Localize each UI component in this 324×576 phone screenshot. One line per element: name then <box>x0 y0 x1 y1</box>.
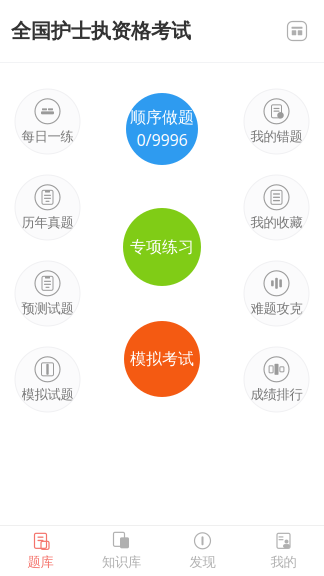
button[interactable]: 预测试题 <box>15 261 80 326</box>
button[interactable]: 发现 <box>162 526 243 576</box>
button[interactable]: 专项练习 <box>123 208 201 286</box>
staticText: 我的 <box>270 554 296 570</box>
button[interactable]: 题库 <box>0 526 81 576</box>
staticText: 成绩排行 <box>250 386 302 403</box>
staticText: 预测试题 <box>21 300 73 317</box>
button[interactable]: 每日一练 <box>15 89 80 154</box>
staticText: 我的错题 <box>250 128 302 145</box>
staticText: 全国护士执资格考试 <box>11 19 191 43</box>
staticText: 历年真题 <box>21 214 73 231</box>
staticText: 专项练习 <box>130 237 194 257</box>
button[interactable]: 我的 <box>243 526 324 576</box>
button[interactable]: 模拟考试 <box>124 321 200 397</box>
staticText: 难题攻克 <box>250 300 302 317</box>
staticText: 模拟试题 <box>21 386 73 403</box>
staticText: 每日一练 <box>21 128 73 145</box>
staticText: 知识库 <box>102 554 141 570</box>
staticText: 发现 <box>189 554 215 570</box>
button[interactable]: 知识库 <box>81 526 162 576</box>
button[interactable]: 成绩排行 <box>244 347 309 412</box>
button[interactable]: 难题攻克 <box>244 261 309 326</box>
button[interactable]: 历年真题 <box>15 175 80 240</box>
button[interactable]: 顺序做题 <box>126 93 198 165</box>
staticText: 题库 <box>27 554 53 570</box>
staticText: 模拟考试 <box>130 349 194 369</box>
button[interactable]: 我的收藏 <box>244 175 309 240</box>
staticText: 0/9996 <box>136 129 187 150</box>
staticText: 我的收藏 <box>250 214 302 231</box>
button[interactable]: 模拟试题 <box>15 347 80 412</box>
button[interactable]: 日历 <box>284 18 310 44</box>
button[interactable]: 我的错题 <box>244 89 309 154</box>
staticText: 顺序做题 <box>130 107 194 127</box>
